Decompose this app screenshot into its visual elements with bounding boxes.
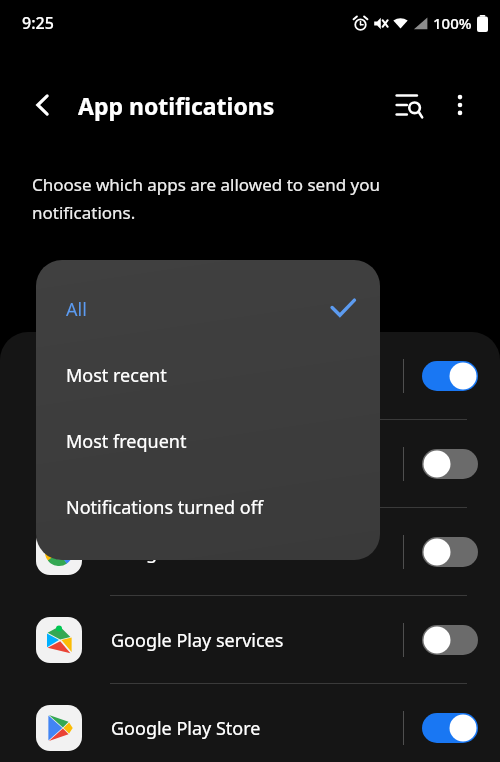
button[interactable]: All: [36, 276, 380, 342]
button[interactable]: Back: [22, 84, 64, 126]
button[interactable]: Notification toggle: [422, 625, 478, 655]
staticText: Choose which apps are allowed to send yo…: [32, 173, 456, 224]
staticText: 9:25: [22, 12, 54, 34]
button[interactable]: More options: [438, 83, 482, 127]
button[interactable]: Most frequent: [36, 408, 380, 474]
button[interactable]: Google Play Store: [0, 684, 500, 762]
button[interactable]: Google Play services: [0, 596, 500, 684]
staticText: Google Play Store: [111, 716, 261, 741]
staticText: Google: [111, 540, 172, 565]
button[interactable]: Search: [386, 82, 432, 128]
staticText: Notifications turned off: [66, 495, 264, 520]
button[interactable]: Notification toggle: [422, 537, 478, 567]
staticText: All: [66, 297, 87, 322]
button[interactable]: Google: [0, 508, 500, 596]
button[interactable]: Most recent: [36, 342, 380, 408]
staticText: Most frequent: [66, 429, 187, 454]
staticText: Google Play services: [111, 628, 284, 653]
button[interactable]: Notifications turned off: [36, 474, 380, 540]
button[interactable]: Notification toggle: [0, 420, 500, 508]
staticText: Most recent: [66, 363, 167, 388]
button[interactable]: Notification toggle: [0, 332, 500, 420]
staticText: 100%: [433, 13, 472, 33]
staticText: App notifications: [78, 90, 275, 121]
button[interactable]: Notification toggle: [422, 361, 478, 391]
button[interactable]: Notification toggle: [422, 713, 478, 743]
button[interactable]: Notification toggle: [422, 449, 478, 479]
